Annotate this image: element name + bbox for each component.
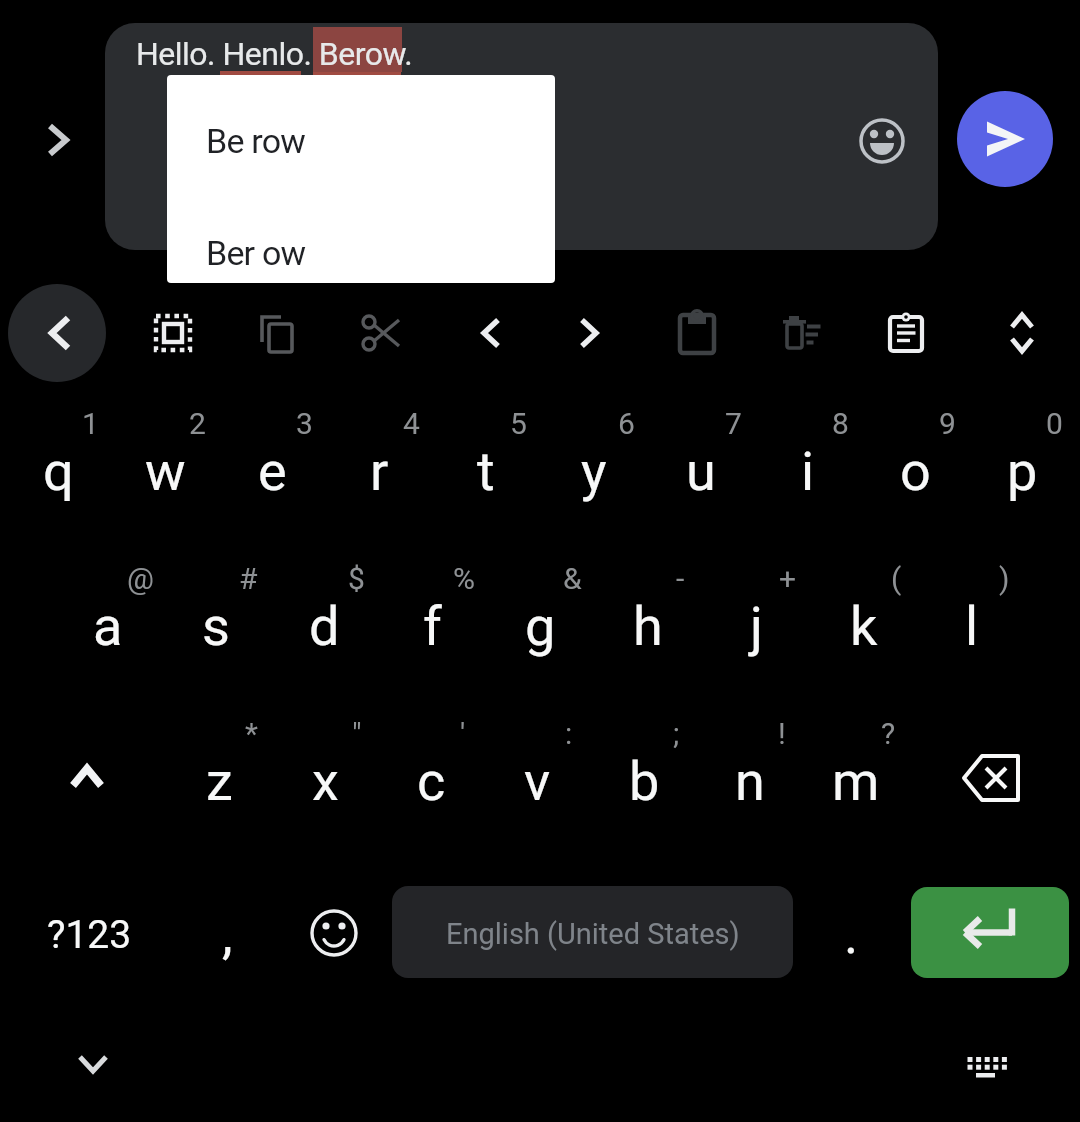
button[interactable] xyxy=(276,875,392,991)
staticText: * xyxy=(245,716,258,751)
button[interactable]: ?123 xyxy=(0,860,178,1010)
button[interactable] xyxy=(852,111,912,171)
staticText: & xyxy=(563,561,582,596)
staticText: u xyxy=(686,440,716,503)
staticText: 9 xyxy=(939,406,956,441)
staticText: p xyxy=(1007,440,1038,503)
staticText: a xyxy=(93,595,123,658)
button[interactable]: x xyxy=(271,706,379,856)
button[interactable] xyxy=(128,288,218,378)
button[interactable] xyxy=(557,298,627,368)
staticText: 6 xyxy=(618,406,635,441)
staticText: ( xyxy=(891,561,902,596)
staticText: l xyxy=(965,595,979,658)
staticText: @ xyxy=(127,561,154,596)
button[interactable]: g xyxy=(486,551,594,701)
staticText: $ xyxy=(348,561,365,596)
button[interactable]: r xyxy=(325,396,433,546)
button[interactable]: b xyxy=(590,706,698,856)
staticText: % xyxy=(453,561,475,596)
button[interactable] xyxy=(232,289,322,379)
button[interactable] xyxy=(0,704,162,854)
button[interactable]: y xyxy=(540,396,648,546)
staticText: " xyxy=(352,716,362,751)
button[interactable] xyxy=(58,1031,128,1101)
staticText: i xyxy=(801,440,815,503)
staticText: 2 xyxy=(189,406,206,441)
staticText: 3 xyxy=(296,406,313,441)
button[interactable] xyxy=(652,289,742,379)
button[interactable]: s xyxy=(162,551,270,701)
button[interactable] xyxy=(982,293,1062,373)
staticText: h xyxy=(633,595,663,658)
staticText: ? xyxy=(881,716,896,751)
button[interactable]: p xyxy=(968,396,1076,546)
button[interactable] xyxy=(918,704,1080,854)
staticText: d xyxy=(309,595,340,658)
staticText: ; xyxy=(673,716,680,751)
staticText: + xyxy=(779,561,797,596)
button[interactable]: f xyxy=(378,551,486,701)
button[interactable]: q xyxy=(4,396,112,546)
staticText: Ber ow xyxy=(206,233,306,273)
button[interactable] xyxy=(8,284,106,382)
button[interactable]: w xyxy=(111,396,219,546)
button[interactable] xyxy=(950,1031,1020,1101)
button[interactable]: v xyxy=(483,706,591,856)
staticText: j xyxy=(750,595,763,658)
button[interactable] xyxy=(756,288,846,378)
button[interactable]: o xyxy=(861,396,969,546)
button[interactable]: t xyxy=(432,396,540,546)
staticText: , xyxy=(222,903,233,966)
staticText: r xyxy=(370,440,389,503)
button[interactable] xyxy=(105,23,938,250)
button[interactable] xyxy=(167,75,555,179)
button[interactable] xyxy=(957,91,1053,187)
staticText: y xyxy=(581,440,607,503)
button[interactable]: l xyxy=(918,551,1026,701)
staticText: v xyxy=(524,750,551,813)
staticText: n xyxy=(735,750,765,813)
button[interactable] xyxy=(167,179,555,283)
button[interactable]: English (United States) xyxy=(392,886,793,978)
button[interactable]: c xyxy=(377,706,485,856)
staticText: 7 xyxy=(725,406,742,441)
button[interactable]: k xyxy=(810,551,918,701)
button[interactable]: z xyxy=(165,706,273,856)
button[interactable]: h xyxy=(594,551,702,701)
staticText: c xyxy=(417,750,446,813)
button[interactable]: j xyxy=(702,551,810,701)
staticText: English (United States) xyxy=(446,917,740,951)
staticText: m xyxy=(832,750,880,813)
staticText: ' xyxy=(460,716,466,751)
button[interactable] xyxy=(911,887,1069,978)
staticText: q xyxy=(43,440,74,503)
staticText: g xyxy=(525,595,556,658)
staticText: z xyxy=(206,750,233,813)
button[interactable] xyxy=(861,288,951,378)
button[interactable]: a xyxy=(54,551,162,701)
staticText: f xyxy=(423,595,442,658)
button[interactable] xyxy=(28,110,88,170)
staticText: o xyxy=(900,440,931,503)
button[interactable]: d xyxy=(270,551,378,701)
staticText: 5 xyxy=(510,406,527,441)
staticText: x xyxy=(312,750,339,813)
button[interactable] xyxy=(453,298,523,368)
staticText: 8 xyxy=(832,406,849,441)
staticText: e xyxy=(258,440,287,503)
button[interactable]: e xyxy=(218,396,326,546)
staticText: . xyxy=(844,903,859,966)
staticText: 0 xyxy=(1046,406,1063,441)
staticText: # xyxy=(239,561,258,596)
staticText: b xyxy=(629,750,660,813)
button[interactable]: m xyxy=(802,706,910,856)
button[interactable]: n xyxy=(696,706,804,856)
button[interactable]: u xyxy=(647,396,755,546)
button[interactable]: . xyxy=(802,859,900,1009)
button[interactable] xyxy=(337,288,427,378)
button[interactable]: i xyxy=(754,396,862,546)
button[interactable]: , xyxy=(178,859,276,1009)
staticText: w xyxy=(145,440,186,503)
staticText: ) xyxy=(999,561,1010,596)
